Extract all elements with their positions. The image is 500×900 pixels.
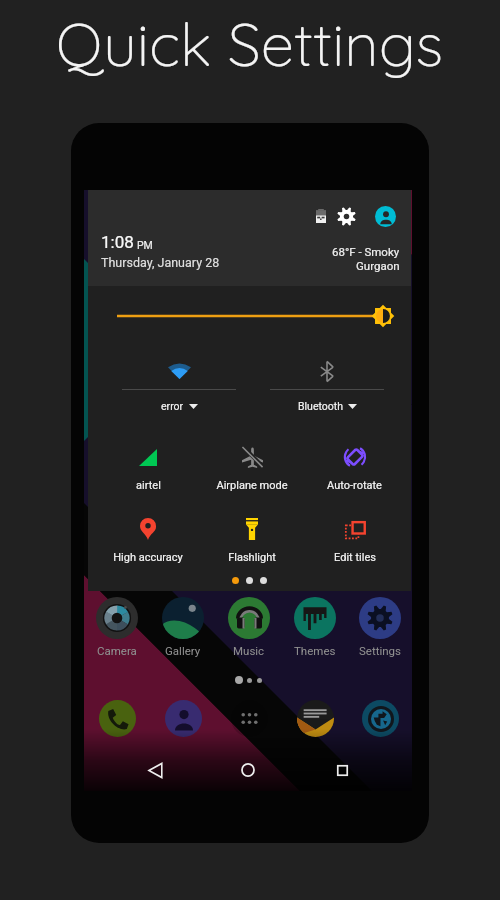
- staticText: Gurgaon: [356, 259, 400, 272]
- staticText: Themes: [294, 644, 336, 657]
- staticText: airtel: [136, 479, 161, 492]
- staticText: Edit tiles: [334, 551, 376, 564]
- button[interactable]: Edit tiles: [303, 517, 406, 564]
- button[interactable]: User: [375, 206, 396, 227]
- staticText: Camera: [97, 644, 137, 657]
- button[interactable]: Gallery: [150, 597, 216, 657]
- staticText: Airplane mode: [216, 479, 288, 492]
- staticText: Flashlight: [228, 551, 276, 564]
- button[interactable]: Email: [282, 699, 348, 737]
- button[interactable]: Themes: [282, 597, 348, 657]
- button[interactable]: Browser: [348, 699, 412, 737]
- staticText: Gallery: [165, 644, 201, 657]
- staticText: Thursday, January 28: [101, 255, 220, 270]
- button[interactable]: airtel: [96, 445, 200, 492]
- button[interactable]: Back: [132, 749, 178, 791]
- button[interactable]: Flashlight: [200, 517, 303, 564]
- staticText: 1:08: [101, 232, 134, 252]
- button[interactable]: Camera: [84, 597, 150, 657]
- button[interactable]: Airplane mode: [200, 445, 303, 492]
- staticText: Settings: [359, 644, 401, 657]
- button[interactable]: Auto-rotate: [303, 445, 406, 492]
- button[interactable]: Brightness: [88, 296, 411, 336]
- button[interactable]: High accuracy: [96, 517, 200, 564]
- button[interactable]: Contacts: [150, 699, 216, 737]
- staticText: Music: [233, 644, 265, 657]
- staticText: Bluetooth: [298, 400, 343, 412]
- staticText: 68°F - Smoky: [332, 245, 400, 258]
- staticText: High accuracy: [113, 551, 183, 564]
- staticText: PM: [137, 239, 153, 251]
- button[interactable]: Bluetooth: [253, 360, 401, 412]
- button[interactable]: Settings: [348, 597, 412, 657]
- button[interactable]: Recents: [319, 749, 365, 791]
- button[interactable]: Battery saver: [309, 204, 333, 228]
- button[interactable]: Phone: [84, 699, 150, 737]
- button[interactable]: Home: [225, 749, 271, 791]
- button[interactable]: All apps: [216, 699, 282, 737]
- button[interactable]: error: [105, 360, 253, 412]
- button[interactable]: Settings: [334, 204, 358, 228]
- button[interactable]: Music: [216, 597, 282, 657]
- staticText: Auto-rotate: [327, 479, 382, 492]
- staticText: Quick Settings: [56, 6, 444, 81]
- staticText: error: [161, 400, 184, 412]
